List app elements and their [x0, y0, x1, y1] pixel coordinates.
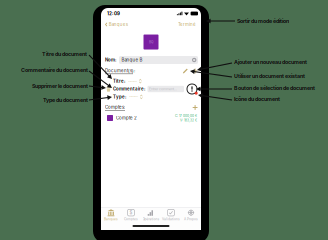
button[interactable]: Validations	[161, 208, 181, 222]
staticText: ———	[128, 95, 137, 99]
button[interactable]: Compte 2	[101, 113, 201, 123]
button[interactable]: $	[121, 208, 141, 222]
button[interactable]: Utiliser un document existant	[181, 67, 189, 75]
staticText: Titre du document	[42, 51, 87, 57]
staticText: Banques	[104, 217, 118, 221]
staticText: Validations	[162, 217, 180, 221]
staticText: Banques	[109, 22, 128, 27]
staticText: $	[129, 210, 132, 215]
button[interactable]: Banques	[103, 20, 130, 29]
button[interactable]: Effacer le nom	[190, 56, 198, 64]
button[interactable]: Terminé	[176, 20, 198, 29]
staticText: BQ	[149, 40, 153, 44]
staticText: A Propos	[184, 217, 198, 221]
button[interactable]: Bouton de sélection de document	[186, 83, 198, 95]
staticText: Entrer comment…	[149, 87, 177, 91]
staticText: Comptes	[124, 217, 138, 221]
staticText: ———	[127, 79, 136, 83]
staticText: Compte 2	[116, 115, 137, 121]
staticText: C: 17 000,00 €	[175, 114, 197, 118]
staticText: Titre:	[113, 78, 125, 84]
button[interactable]: A Propos	[181, 208, 201, 222]
staticText: Bouton de sélection de document	[234, 85, 315, 91]
staticText: Type du document	[43, 97, 88, 103]
button[interactable]: Ajouter un nouveau document	[191, 67, 199, 75]
staticText: Icône du document	[234, 96, 280, 102]
staticText: Document(s):	[105, 68, 135, 73]
button[interactable]: Supprimer le document	[105, 86, 112, 92]
staticText: Sortir du mode édition	[237, 18, 289, 24]
staticText: Type:	[113, 94, 126, 99]
staticText: Commentaire:	[113, 86, 145, 92]
staticText: Comptes:	[105, 104, 125, 110]
staticText: Opérations	[142, 217, 159, 221]
staticText: Supprimer le document	[32, 83, 88, 89]
staticText: Utiliser un document existant	[234, 73, 305, 79]
staticText: 12:09	[107, 11, 120, 16]
staticText: Banque B	[121, 57, 142, 63]
button[interactable]: Ajouter un compte	[191, 104, 199, 111]
staticText: Ajouter un nouveau document	[234, 59, 307, 65]
staticText: V: 183,32 €	[180, 118, 197, 122]
staticText: Commentaire du document	[21, 67, 88, 73]
button[interactable]: Banques	[101, 208, 121, 222]
staticText: Nom:	[105, 57, 116, 63]
button[interactable]: Opérations	[141, 208, 161, 222]
staticText: Terminé	[178, 22, 196, 27]
